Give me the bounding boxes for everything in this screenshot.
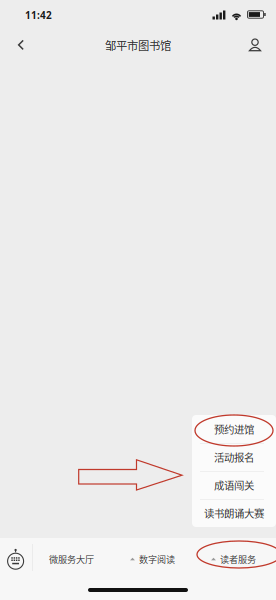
staticText: 成语闯关 <box>214 477 254 493</box>
staticText: 读者服务 <box>220 552 256 565</box>
button[interactable]: 活动报名 <box>192 443 276 471</box>
staticText: 11:42 <box>25 8 52 22</box>
button[interactable]: 预约进馆 <box>192 415 276 443</box>
staticText: 活动报名 <box>214 449 254 465</box>
button[interactable]: 成语闯关 <box>192 471 276 499</box>
button[interactable]: 读者服务 <box>193 538 274 580</box>
button[interactable]: 微服务大厅 <box>31 538 112 580</box>
button[interactable]: 数字阅读 <box>112 538 193 580</box>
button[interactable]: 返回 <box>6 30 36 60</box>
staticText: 数字阅读 <box>139 552 175 565</box>
staticText: 预约进馆 <box>214 421 254 437</box>
staticText: 读书朗诵大赛 <box>204 505 264 521</box>
button[interactable]: 读书朗诵大赛 <box>192 499 276 527</box>
staticText: 邹平市图书馆 <box>105 37 171 53</box>
staticText: 微服务大厅 <box>49 552 94 565</box>
button[interactable]: 表情 <box>0 538 32 580</box>
button[interactable]: 个人中心 <box>240 30 270 60</box>
